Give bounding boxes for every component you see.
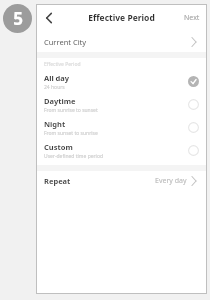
button[interactable]: Daytime (36, 93, 207, 116)
staticText: 5 (13, 7, 23, 30)
staticText: From sunset to sunrise (44, 130, 98, 137)
staticText: Night (44, 119, 66, 129)
button[interactable]: Night (36, 116, 207, 139)
button[interactable]: Next (177, 8, 207, 28)
button[interactable]: Current City (36, 32, 207, 52)
staticText: Custom (44, 142, 73, 152)
staticText: 24 hours (44, 84, 65, 91)
staticText: Daytime (44, 96, 76, 106)
staticText: Current City (44, 37, 189, 47)
staticText: From sunrise to sunset (44, 107, 98, 114)
staticText: Effective Period (88, 12, 155, 24)
staticText: User-defined time period (44, 153, 103, 160)
staticText: Every day (155, 176, 187, 186)
staticText: Repeat (44, 176, 155, 186)
staticText: Effective Period (44, 61, 81, 68)
button[interactable]: Back (39, 8, 59, 28)
button[interactable]: Custom (36, 139, 207, 162)
staticText: All day (44, 73, 70, 83)
button[interactable]: Repeat (36, 171, 207, 191)
button[interactable]: All day (36, 70, 207, 93)
staticText: Next (184, 13, 200, 23)
